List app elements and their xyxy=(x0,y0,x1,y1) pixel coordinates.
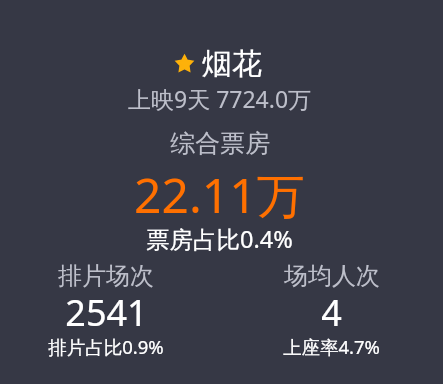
staticText: 烟花 xyxy=(202,45,262,83)
button[interactable]: 场均人次 xyxy=(283,261,380,365)
staticText: 上座率4.7% xyxy=(283,334,380,359)
staticText: 排片占比0.9% xyxy=(48,334,164,359)
staticText: 综合票房 xyxy=(170,128,270,159)
staticText: 4 xyxy=(321,288,342,337)
staticText: 2541 xyxy=(65,288,148,337)
other: Favourite xyxy=(175,55,194,74)
staticText: 22.11万 xyxy=(134,162,305,228)
staticText: 票房占比0.4% xyxy=(146,223,293,255)
button[interactable]: Favourite xyxy=(175,45,262,83)
staticText: 上映9天 7724.0万 xyxy=(128,83,312,114)
staticText: 排片场次 xyxy=(58,261,154,291)
button[interactable]: 排片场次 xyxy=(48,261,164,365)
staticText: 场均人次 xyxy=(284,261,380,291)
